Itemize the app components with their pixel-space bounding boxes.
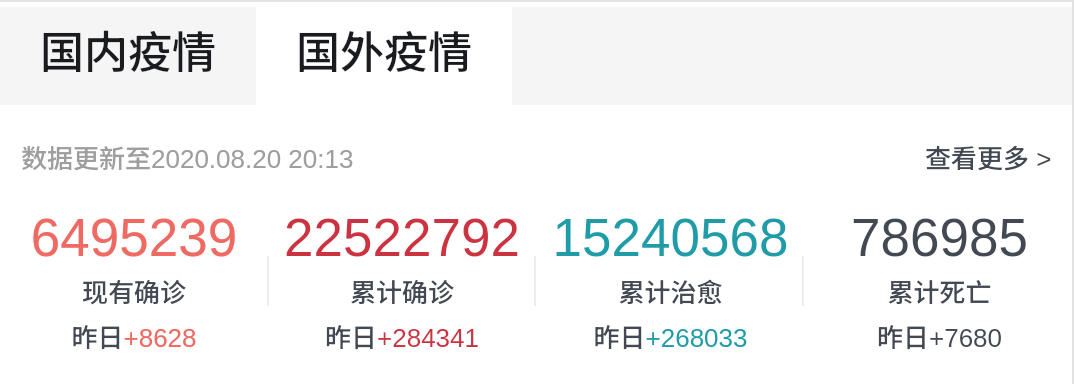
staticText: 国外疫情 <box>296 17 472 81</box>
staticText: 22522792 <box>268 208 536 267</box>
staticText: 查看更多 > <box>925 138 1052 176</box>
staticText: 累计死亡 <box>805 272 1074 310</box>
staticText: 累计治愈 <box>536 272 805 310</box>
staticText: 数据更新至2020.08.20 20:13 <box>21 138 354 176</box>
button[interactable]: 国外疫情 <box>256 7 512 105</box>
staticText: 昨日+268033 <box>536 317 805 355</box>
staticText: 累计确诊 <box>268 272 536 310</box>
button[interactable]: 786985 <box>805 200 1074 370</box>
staticText: 6495239 <box>0 208 268 267</box>
button[interactable]: 查看更多 > <box>925 138 1052 176</box>
staticText: 国内疫情 <box>40 17 216 81</box>
staticText: 786985 <box>805 208 1074 267</box>
staticText: 昨日+284341 <box>268 317 536 355</box>
button[interactable]: 国内疫情 <box>0 7 256 105</box>
button[interactable]: 6495239 <box>0 200 268 370</box>
staticText: 昨日+8628 <box>0 317 268 355</box>
button[interactable]: 15240568 <box>536 200 805 370</box>
button[interactable]: 22522792 <box>268 200 536 370</box>
staticText: 15240568 <box>536 208 805 267</box>
staticText: 昨日+7680 <box>805 317 1074 355</box>
staticText: 现有确诊 <box>0 272 268 310</box>
